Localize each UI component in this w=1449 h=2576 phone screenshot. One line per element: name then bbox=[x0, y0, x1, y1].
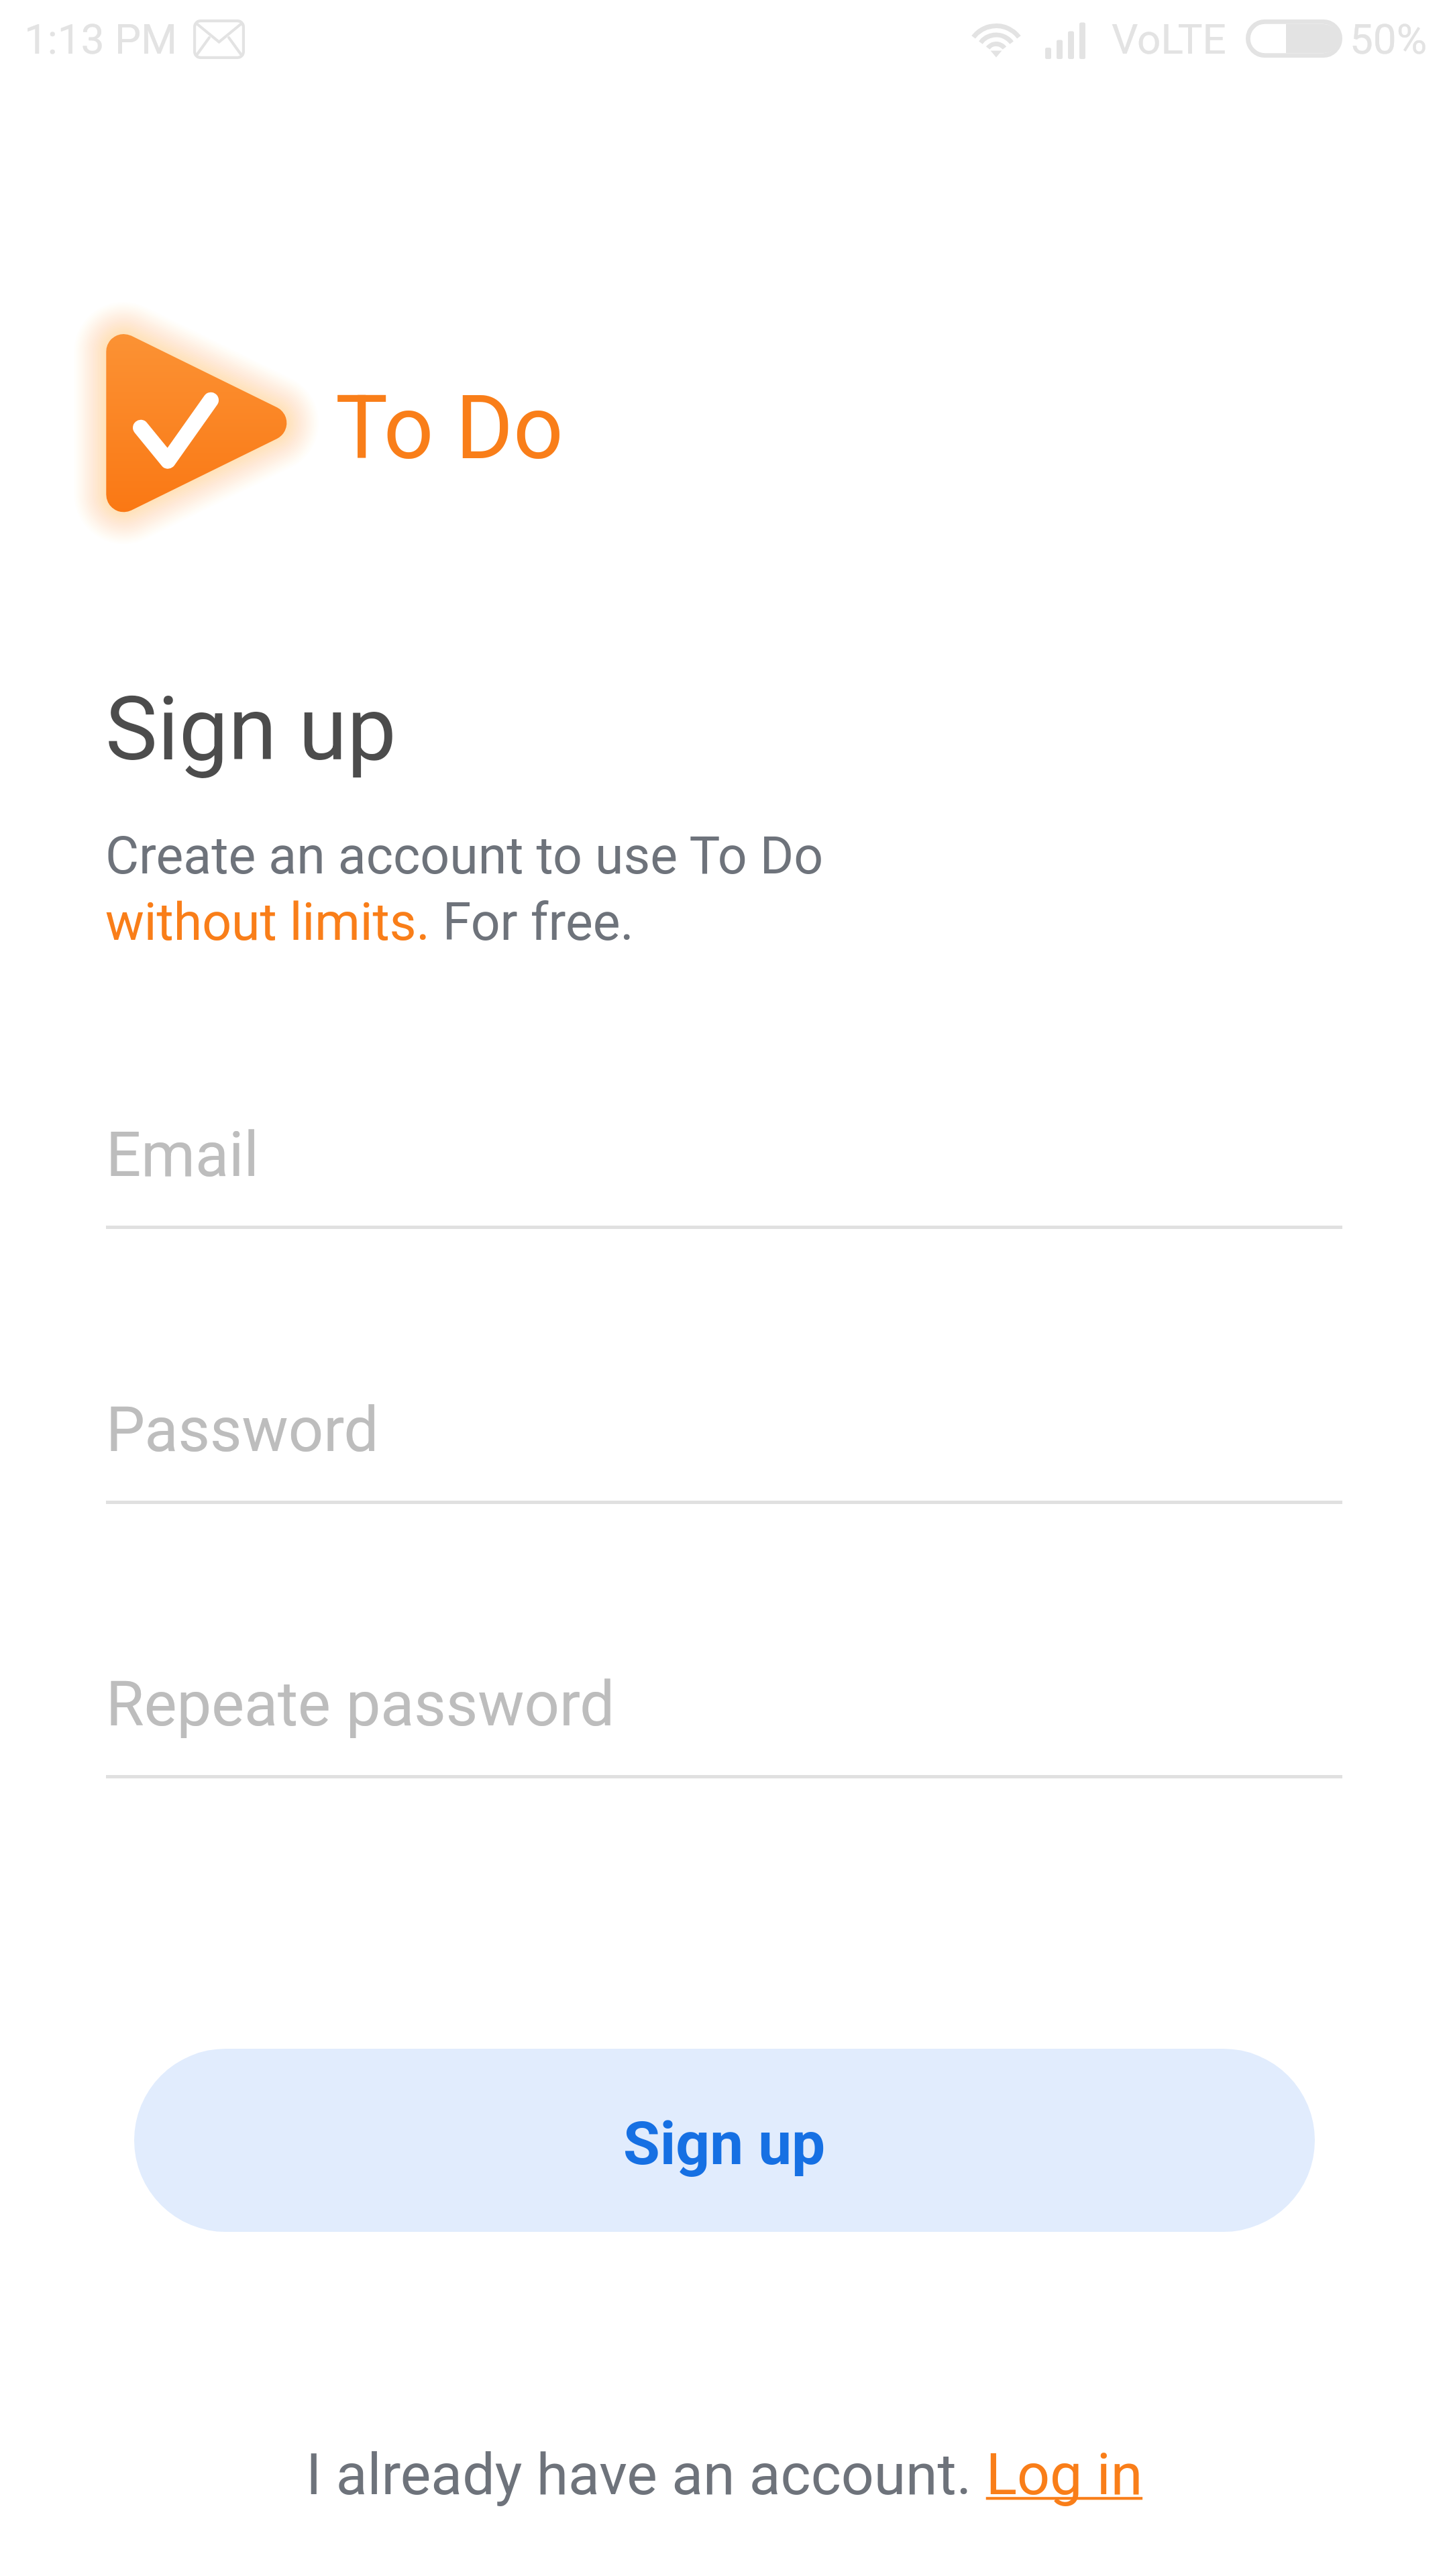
staticText: I already have an account. Log in bbox=[306, 2440, 1143, 2508]
other: Battery 50 percent bbox=[1246, 19, 1342, 58]
other: To Do logo bbox=[27, 255, 362, 590]
button[interactable]: Email bbox=[106, 1119, 1342, 1293]
staticText: Create an account to use To Do without l… bbox=[105, 826, 824, 953]
button[interactable]: I already have an account. Log in bbox=[288, 2427, 1161, 2522]
other: Wi-Fi signal bbox=[966, 19, 1026, 62]
other: Unread mail bbox=[193, 19, 245, 59]
staticText: 50% bbox=[1350, 15, 1428, 64]
button[interactable]: Repeate password bbox=[106, 1668, 1342, 1843]
staticText: Password bbox=[106, 1394, 379, 1466]
staticText: To Do bbox=[335, 376, 563, 480]
other: Mobile signal bbox=[1045, 21, 1087, 59]
button[interactable]: Sign up bbox=[134, 2049, 1315, 2232]
staticText: Repeate password bbox=[106, 1668, 615, 1741]
staticText: Email bbox=[106, 1119, 259, 1191]
staticText: Sign up bbox=[623, 2108, 826, 2178]
staticText: Sign up bbox=[105, 678, 396, 781]
button[interactable]: Password bbox=[106, 1394, 1342, 1568]
staticText: 1:13 PM bbox=[24, 15, 178, 64]
staticText: VoLTE bbox=[1112, 15, 1226, 64]
